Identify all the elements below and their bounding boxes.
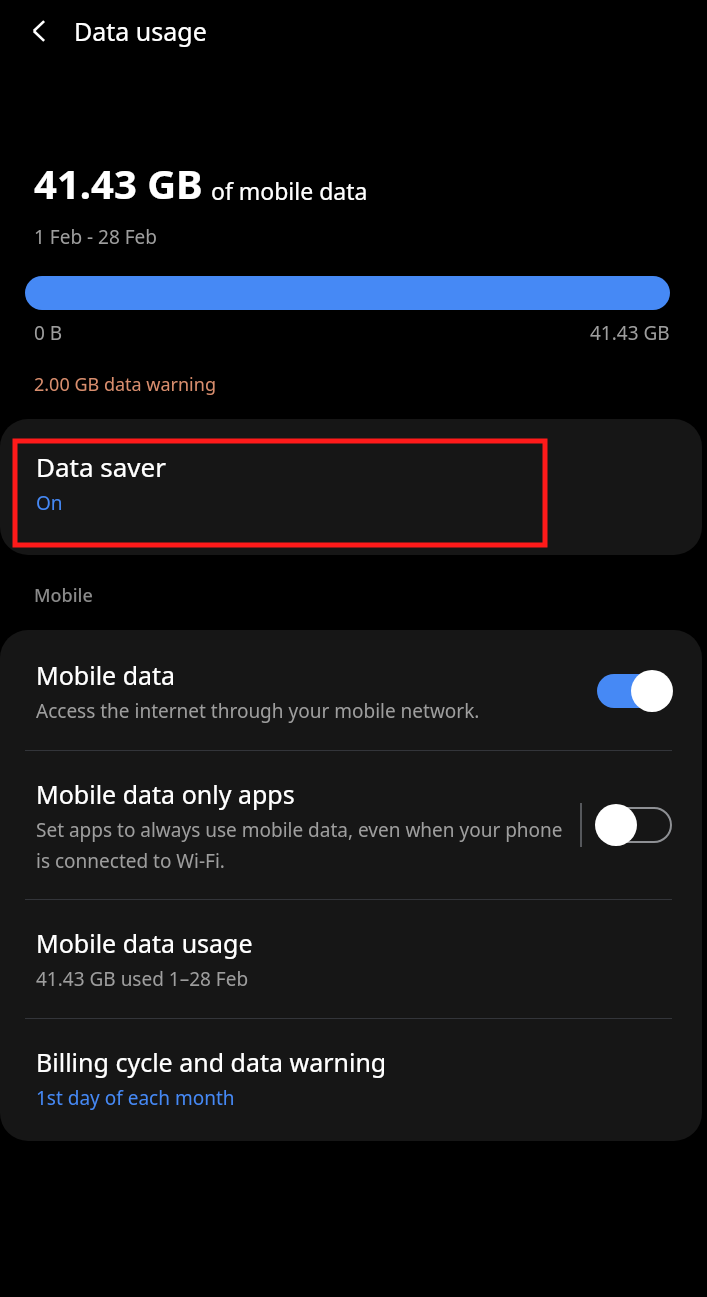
button[interactable]: Back <box>18 9 62 53</box>
button[interactable]: Data saver <box>0 419 702 555</box>
button[interactable]: Mobile data usage <box>0 900 702 1018</box>
staticText: Mobile <box>34 583 93 608</box>
staticText: Mobile data only apps <box>36 777 295 811</box>
staticText: Access the internet through your mobile … <box>36 698 480 724</box>
staticText: 1 Feb - 28 Feb <box>34 224 158 250</box>
staticText: 41.43 GB <box>590 320 670 346</box>
staticText: 41.43 GB used 1–28 Feb <box>36 966 249 992</box>
staticText: of mobile data <box>211 175 368 206</box>
staticText: Data saver <box>36 449 166 484</box>
button[interactable]: Mobile data <box>0 630 702 750</box>
staticText: Data usage <box>74 14 207 48</box>
button[interactable]: Toggle off <box>596 802 672 848</box>
button[interactable]: Billing cycle and data warning <box>0 1019 702 1141</box>
staticText: Mobile data <box>36 658 176 692</box>
staticText: 0 B <box>34 320 63 346</box>
staticText: 1st day of each month <box>36 1085 235 1111</box>
staticText: 2.00 GB data warning <box>34 372 216 397</box>
staticText: Mobile data usage <box>36 926 253 960</box>
staticText: Billing cycle and data warning <box>36 1045 387 1079</box>
button[interactable]: Toggle on <box>596 668 672 714</box>
staticText: 41.43 GB <box>34 156 203 210</box>
staticText: Set apps to always use mobile data, even… <box>36 817 570 873</box>
button[interactable]: Mobile data only apps <box>0 751 702 899</box>
staticText: On <box>36 490 63 516</box>
